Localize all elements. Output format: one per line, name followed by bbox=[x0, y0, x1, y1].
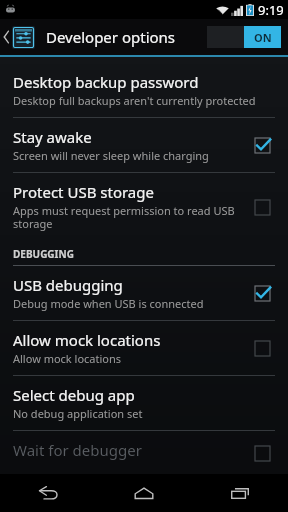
staticText: Select debug app bbox=[13, 385, 135, 405]
staticText: 9:19 bbox=[258, 1, 284, 19]
button[interactable]: Desktop backup password bbox=[0, 63, 288, 117]
staticText: Apps must request permission to read USB… bbox=[13, 203, 242, 231]
button[interactable]: Developer options on bbox=[207, 26, 281, 48]
button[interactable]: Wait for debugger bbox=[0, 431, 288, 474]
button[interactable]: Checked bbox=[250, 133, 274, 157]
button[interactable]: Back bbox=[0, 474, 96, 512]
staticText: DEBUGGING bbox=[13, 247, 74, 261]
staticText: Desktop backup password bbox=[13, 72, 199, 92]
button[interactable]: Stay awake bbox=[0, 118, 288, 172]
button[interactable]: Navigate up bbox=[0, 19, 39, 55]
staticText: ON bbox=[254, 30, 272, 45]
staticText: Screen will never sleep while charging bbox=[13, 148, 209, 163]
button[interactable]: Checked bbox=[250, 281, 274, 305]
button[interactable]: Unchecked bbox=[250, 441, 274, 465]
button[interactable]: Select debug app bbox=[0, 376, 288, 430]
button[interactable]: Recent apps bbox=[192, 474, 288, 512]
button[interactable]: Protect USB storage bbox=[0, 173, 288, 240]
button[interactable]: Unchecked bbox=[250, 195, 274, 219]
button[interactable]: USB debugging bbox=[0, 266, 288, 320]
staticText: Debug mode when USB is connected bbox=[13, 296, 204, 311]
button[interactable]: Unchecked bbox=[250, 336, 274, 360]
staticText: Allow mock locations bbox=[13, 330, 161, 350]
staticText: Desktop full backups aren't currently pr… bbox=[13, 93, 256, 108]
staticText: No debug application set bbox=[13, 406, 143, 421]
button[interactable]: Allow mock locations bbox=[0, 321, 288, 375]
staticText: Developer options bbox=[46, 27, 176, 47]
staticText: Protect USB storage bbox=[13, 182, 154, 202]
staticText: Allow mock locations bbox=[13, 351, 122, 366]
staticText: USB debugging bbox=[13, 275, 123, 295]
button[interactable]: Home bbox=[96, 474, 192, 512]
staticText: Wait for debugger bbox=[13, 440, 142, 460]
staticText: Stay awake bbox=[13, 127, 92, 147]
